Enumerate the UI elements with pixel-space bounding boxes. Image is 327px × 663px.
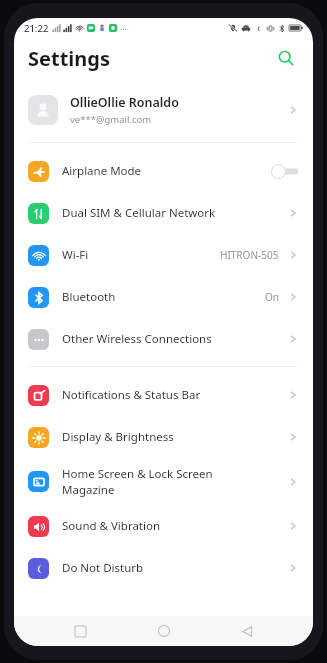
button[interactable]: Back (230, 616, 264, 646)
button[interactable] (271, 164, 299, 179)
staticText: Sound & Vibration (62, 518, 287, 534)
button[interactable]: Notifications & Status Bar (14, 374, 313, 416)
staticText: ve***@gmail.com (70, 113, 152, 126)
button[interactable]: Home (147, 616, 181, 646)
staticText: Bluetooth (62, 289, 265, 305)
staticText: Airplane Mode (62, 163, 271, 179)
button[interactable]: Home Screen & Lock Screen Magazine (14, 458, 313, 505)
staticText: 21:22 (24, 22, 49, 35)
button[interactable]: Display & Brightness (14, 416, 313, 458)
staticText: Wi-Fi (62, 247, 220, 263)
button[interactable]: OllieOllie Ronaldo (14, 84, 313, 136)
button[interactable]: Dual SIM & Cellular Network (14, 192, 313, 234)
button[interactable]: Other Wireless Connections (14, 318, 313, 360)
staticText: HITRON-505 (220, 248, 279, 262)
staticText: Other Wireless Connections (62, 331, 287, 347)
button[interactable]: Wi-Fi (14, 234, 313, 276)
staticText: OllieOllie Ronaldo (70, 94, 179, 111)
button[interactable]: Bluetooth (14, 276, 313, 318)
staticText: Home Screen & Lock Screen Magazine (62, 466, 287, 497)
button[interactable]: Do Not Disturb (14, 547, 313, 589)
staticText: Do Not Disturb (62, 560, 287, 576)
staticText: On (265, 290, 279, 304)
button[interactable]: Recent apps (63, 616, 97, 646)
button[interactable]: Airplane Mode (14, 150, 313, 192)
staticText: Dual SIM & Cellular Network (62, 205, 287, 221)
staticText: Settings (28, 45, 110, 72)
button[interactable]: Search (271, 43, 301, 73)
button[interactable]: Sound & Vibration (14, 505, 313, 547)
staticText: Notifications & Status Bar (62, 387, 287, 403)
staticText: Display & Brightness (62, 429, 287, 445)
